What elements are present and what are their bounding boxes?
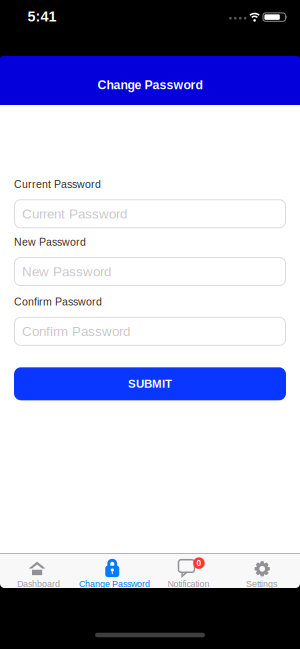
staticText: Change Password [97, 78, 202, 92]
staticText: New Password [22, 264, 111, 279]
staticText: Confirm Password [14, 296, 102, 308]
staticText: 5:41 [27, 8, 56, 25]
button[interactable]: Confirm Password [14, 317, 286, 346]
staticText: Notification [167, 579, 209, 589]
staticText: Current Password [14, 178, 101, 190]
button[interactable]: Change Password [75, 554, 150, 588]
staticText: Change Password [79, 579, 150, 589]
staticText: Dashboard [17, 579, 60, 589]
staticText: New Password [14, 236, 86, 248]
button[interactable]: SUBMIT [14, 367, 286, 400]
button[interactable]: Current Password [14, 199, 286, 228]
staticText: Current Password [22, 206, 127, 221]
staticText: 0 [196, 558, 201, 568]
button[interactable]: 0 [150, 554, 225, 588]
button[interactable]: Settings [225, 554, 300, 588]
staticText: Settings [246, 579, 277, 589]
button[interactable]: Dashboard [0, 554, 75, 588]
staticText: SUBMIT [128, 377, 172, 390]
staticText: Confirm Password [22, 324, 130, 339]
button[interactable]: New Password [14, 257, 286, 286]
